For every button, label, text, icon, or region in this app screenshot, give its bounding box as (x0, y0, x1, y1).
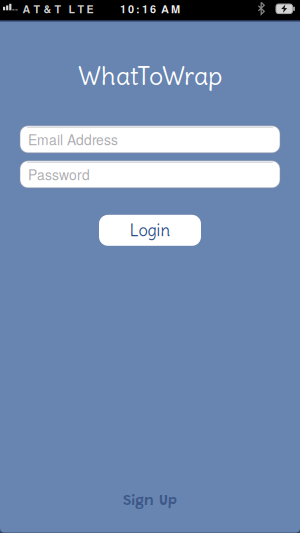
button[interactable]: Password (0, 161, 300, 188)
button[interactable]: Login (99, 215, 201, 246)
button[interactable]: Email Address (0, 126, 300, 153)
button[interactable]: Sign Up (123, 494, 177, 509)
staticText: Email Address (28, 129, 118, 149)
staticText: A T & T (22, 1, 61, 16)
staticText: WhatToWrap (78, 60, 222, 92)
staticText: Password (28, 164, 90, 184)
staticText: 1 0 : 1 6 A M (120, 1, 180, 17)
staticText: Login (129, 220, 170, 241)
staticText: L T E (68, 1, 93, 16)
staticText: Sign Up (123, 494, 177, 509)
